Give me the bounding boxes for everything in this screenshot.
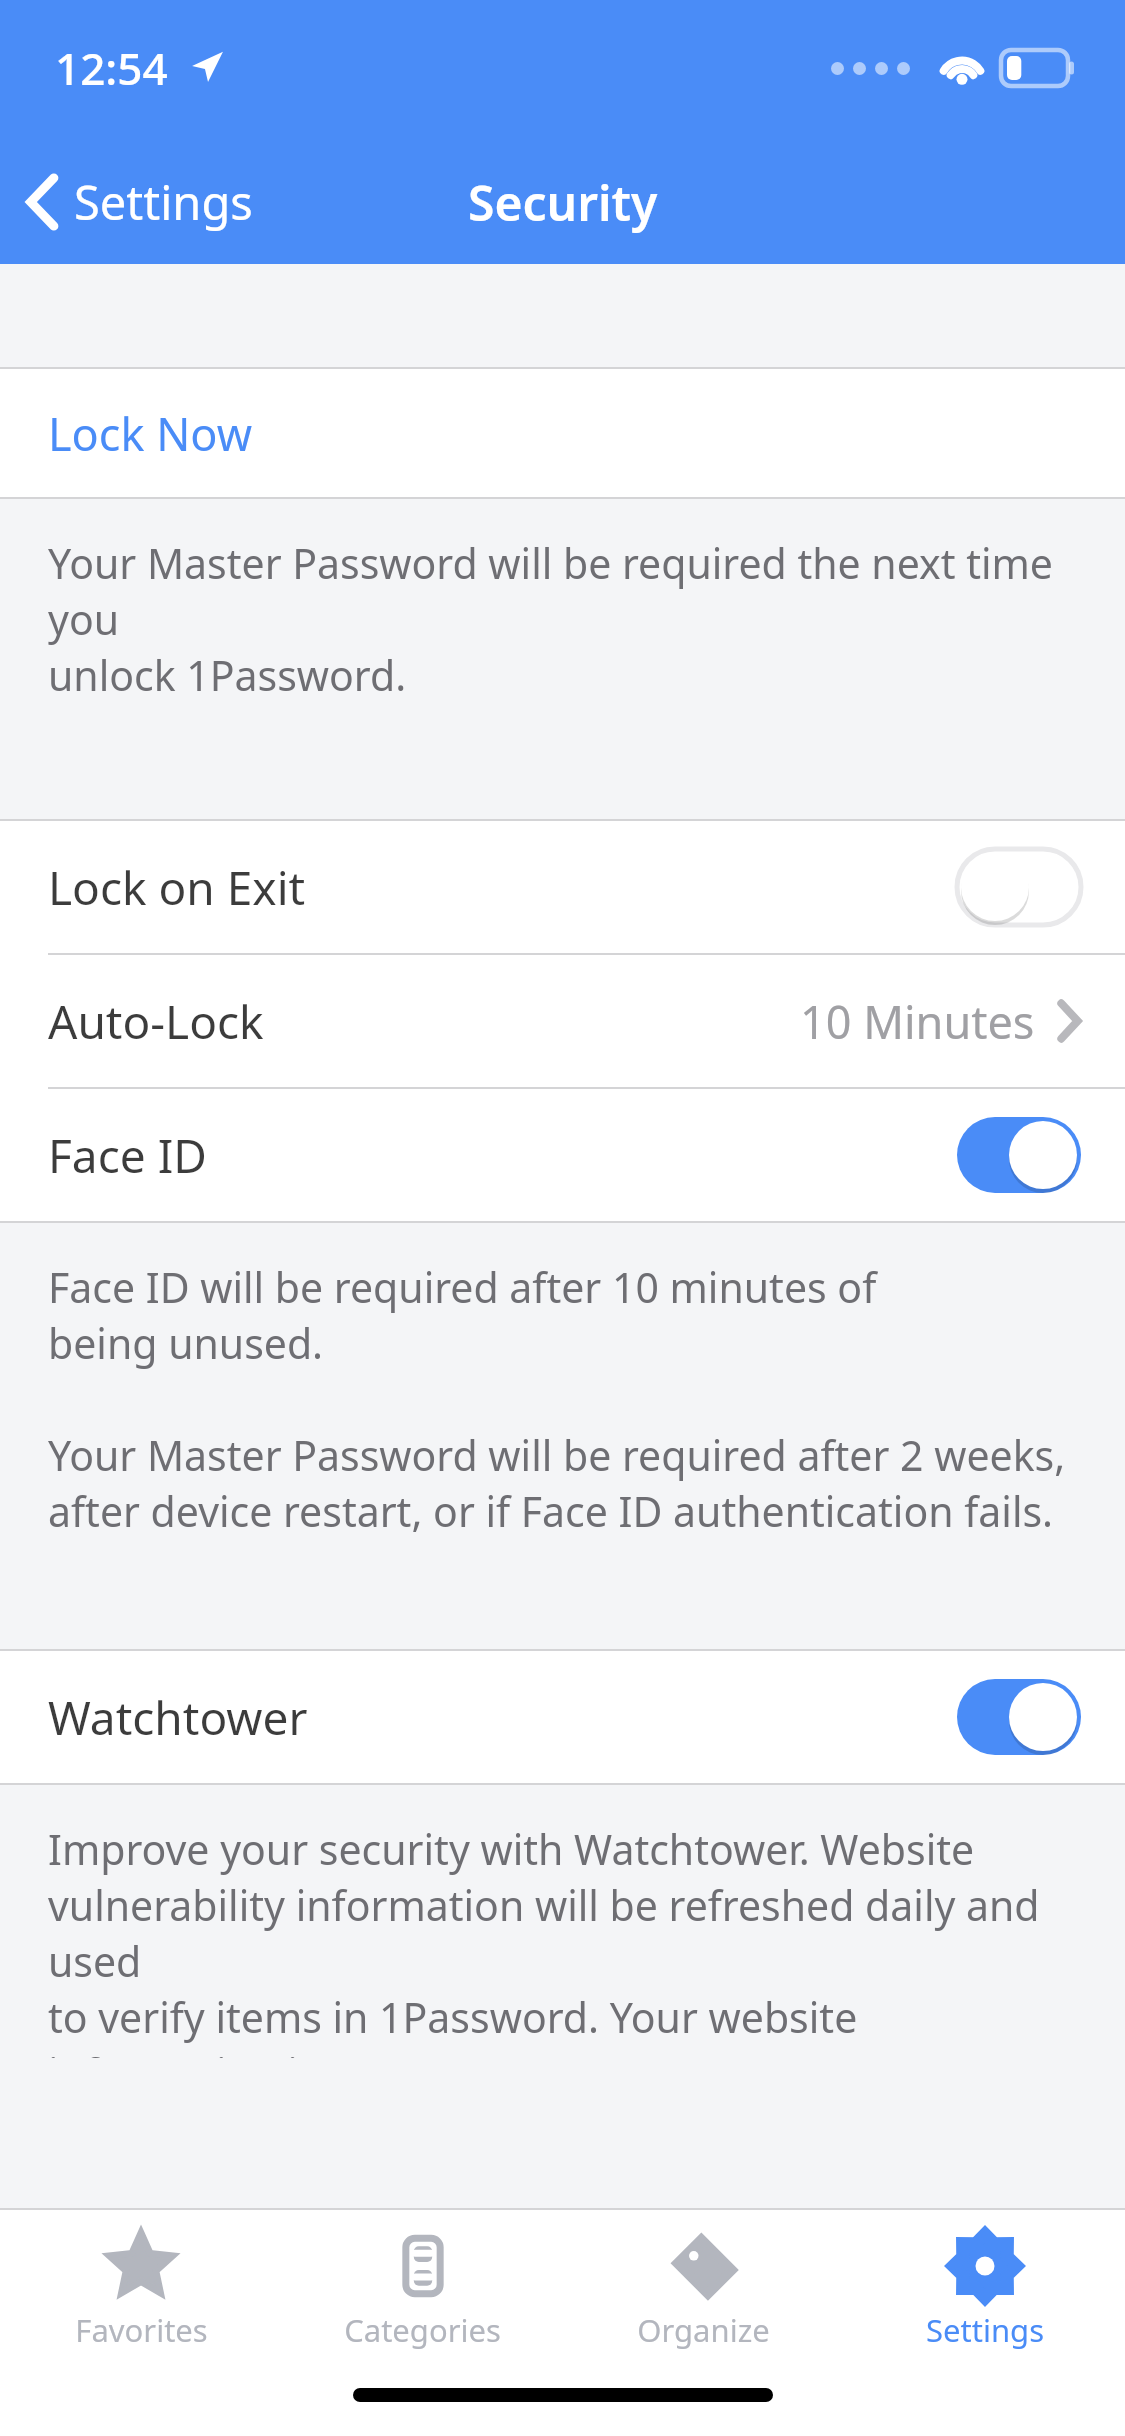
button[interactable]: Organize bbox=[563, 2210, 844, 2368]
staticText: Security bbox=[468, 170, 658, 235]
staticText: Settings bbox=[74, 170, 253, 234]
button[interactable]: On bbox=[957, 1117, 1081, 1193]
staticText: Face ID will be required after 10 minute… bbox=[48, 1259, 1066, 1539]
button[interactable]: On bbox=[957, 1679, 1081, 1755]
button[interactable]: Settings bbox=[844, 2210, 1125, 2368]
staticText: Organize bbox=[637, 2309, 770, 2351]
staticText: Face ID bbox=[48, 1124, 207, 1187]
button[interactable]: Watchtower bbox=[0, 1651, 1125, 1783]
staticText: Improve your security with Watchtower. W… bbox=[48, 1821, 1085, 2058]
staticText: Your Master Password will be required th… bbox=[48, 535, 1085, 703]
staticText: Categories bbox=[344, 2309, 501, 2351]
button[interactable]: Favorites bbox=[0, 2210, 282, 2368]
button[interactable]: Auto-Lock bbox=[0, 955, 1125, 1087]
staticText: Watchtower bbox=[48, 1686, 308, 1749]
button[interactable]: Lock on Exit bbox=[0, 821, 1125, 953]
staticText: Lock on Exit bbox=[48, 856, 306, 919]
staticText: 10 Minutes bbox=[800, 991, 1035, 1052]
button[interactable]: Off bbox=[957, 849, 1081, 925]
staticText: Lock Now bbox=[48, 403, 253, 464]
button[interactable]: Lock Now bbox=[0, 369, 1125, 497]
staticText: 12:54 bbox=[55, 38, 168, 98]
staticText: Favorites bbox=[75, 2309, 208, 2351]
staticText: Settings bbox=[926, 2309, 1044, 2351]
button[interactable]: Face ID bbox=[0, 1089, 1125, 1221]
staticText: Auto-Lock bbox=[48, 990, 264, 1053]
button[interactable]: Settings bbox=[0, 140, 271, 264]
button[interactable]: Categories bbox=[282, 2210, 563, 2368]
